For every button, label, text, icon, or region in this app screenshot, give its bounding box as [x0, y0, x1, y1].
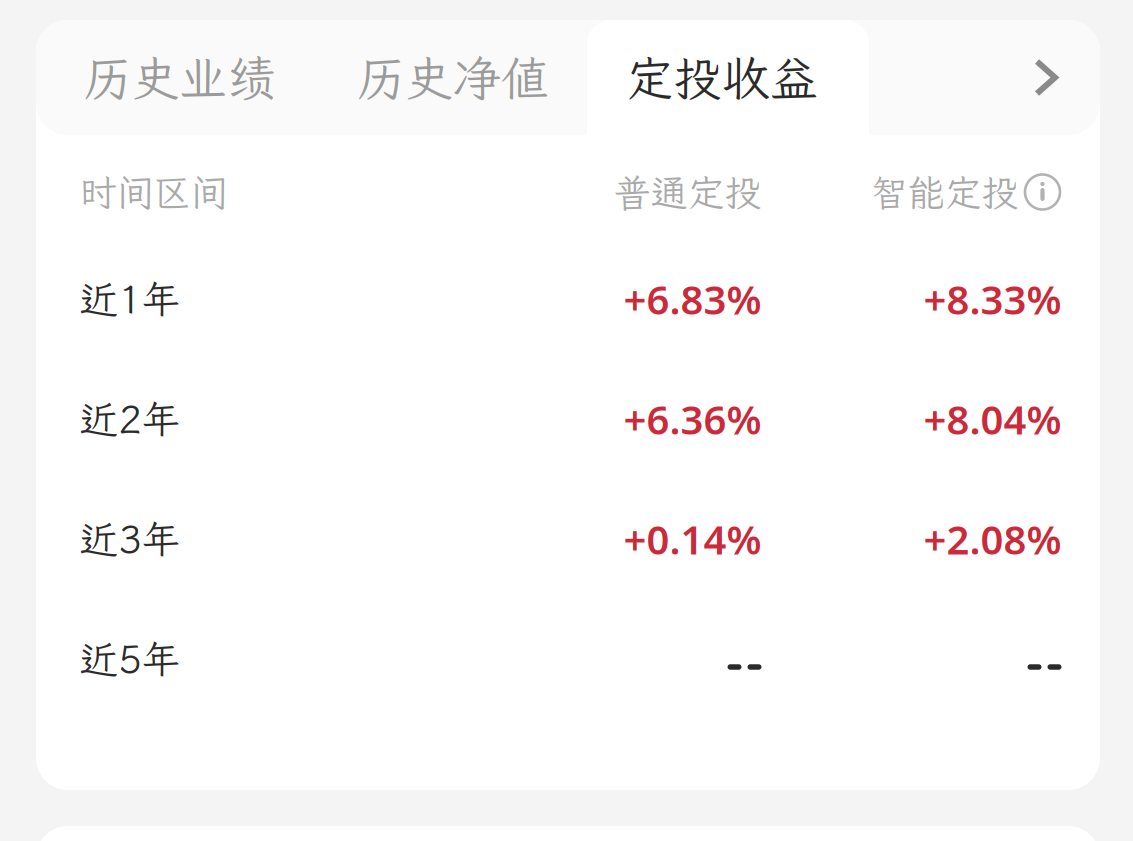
button[interactable]: 历史业绩 — [40, 20, 319, 135]
button[interactable]: 定投收益 — [587, 20, 869, 135]
staticText: 智能定投 — [870, 167, 1018, 217]
staticText: +6.83% — [623, 272, 761, 325]
staticText: +2.08% — [923, 512, 1061, 565]
staticText: +6.36% — [623, 392, 761, 445]
staticText: 定投收益 — [626, 46, 818, 109]
staticText: 普通定投 — [613, 167, 761, 217]
button[interactable]: 历史净值 — [319, 20, 587, 135]
staticText: +8.04% — [923, 392, 1061, 445]
staticText: +8.33% — [923, 272, 1061, 325]
staticText: +0.14% — [623, 512, 761, 565]
button[interactable]: 智能定投说明 — [1023, 173, 1061, 211]
staticText: 近1年 — [79, 273, 180, 324]
staticText: 近5年 — [79, 633, 180, 684]
staticText: 近3年 — [79, 513, 180, 564]
staticText: 近2年 — [79, 393, 180, 444]
button[interactable]: 更多 — [1016, 20, 1076, 135]
staticText: 历史业绩 — [83, 46, 275, 109]
staticText: 时间区间 — [79, 167, 227, 217]
staticText: 历史净值 — [357, 46, 549, 109]
